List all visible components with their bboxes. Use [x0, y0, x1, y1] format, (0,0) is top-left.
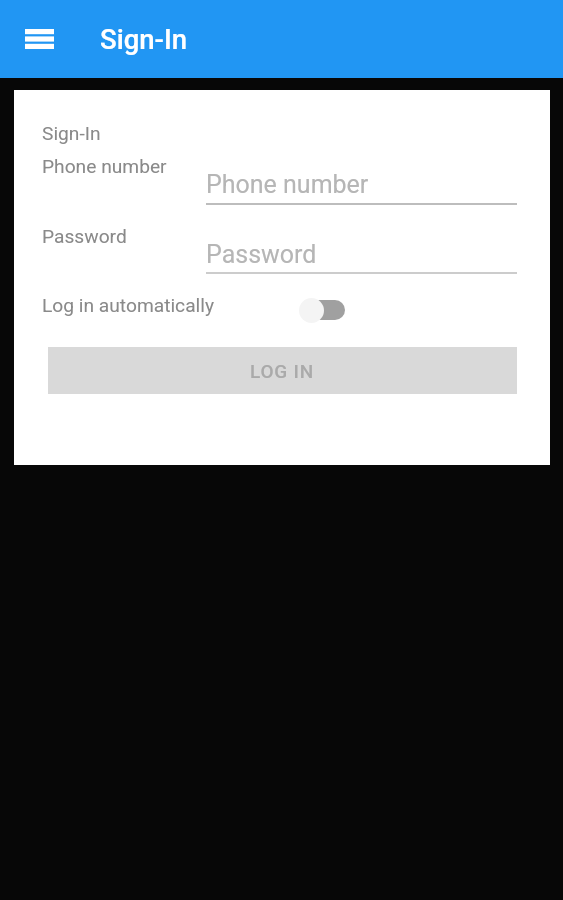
staticText: Sign-In — [100, 23, 187, 55]
staticText: Log in automatically — [42, 294, 214, 317]
staticText: Sign-In — [42, 122, 101, 145]
button[interactable]: Password — [206, 234, 517, 275]
button[interactable]: Log in automatically — [293, 292, 359, 328]
staticText: Phone number — [206, 170, 369, 199]
staticText: Phone number — [42, 155, 167, 178]
staticText: Password — [206, 240, 317, 269]
button[interactable]: Phone number — [206, 164, 517, 205]
button[interactable]: LOG IN — [48, 347, 517, 394]
button[interactable]: Open navigation drawer — [12, 11, 67, 66]
staticText: Password — [42, 225, 127, 248]
staticText: LOG IN — [250, 360, 315, 382]
